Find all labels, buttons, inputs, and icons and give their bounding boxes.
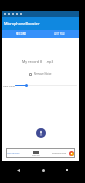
staticText: MicrophoneBooster — [4, 21, 40, 26]
button[interactable]: Home — [37, 164, 49, 176]
button[interactable]: Microphone — [6, 148, 75, 158]
staticText: Remove Noise — [34, 72, 52, 76]
button[interactable]: LIST FILE — [40, 30, 79, 38]
button[interactable]: Recent apps — [61, 164, 73, 176]
staticText: Free App — [32, 154, 40, 156]
button[interactable]: Record — [36, 128, 46, 138]
staticText: Download now — [52, 152, 67, 155]
button[interactable]: Back — [12, 164, 24, 176]
staticText: My record 8 — [22, 59, 42, 64]
staticText: Microphone — [7, 152, 20, 155]
staticText: RECORD — [16, 32, 27, 36]
button[interactable]: RECORD — [2, 30, 40, 38]
staticText: .mp3 — [46, 60, 54, 64]
staticText: Gain Value — [3, 84, 15, 87]
button[interactable]: Remove Noise — [2, 72, 79, 76]
staticText: LIST FILE — [54, 32, 65, 36]
